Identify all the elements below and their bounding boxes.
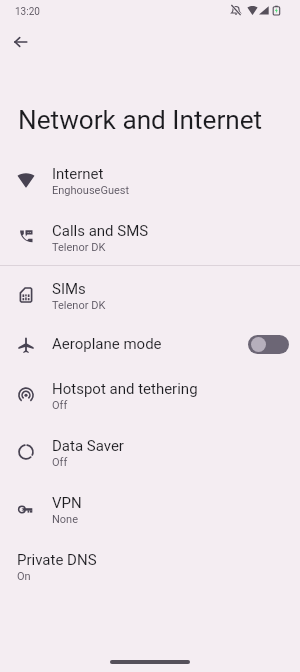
button[interactable]: VPN (0, 480, 300, 537)
button[interactable]: Aeroplane mode (0, 323, 300, 366)
button[interactable]: Internet (0, 151, 300, 208)
staticText: Telenor DK (52, 299, 106, 312)
button[interactable]: Data Saver (0, 423, 300, 480)
staticText: Aeroplane mode (52, 335, 162, 353)
button[interactable]: Back (2, 24, 38, 60)
staticText: Private DNS (17, 551, 97, 569)
staticText: Calls and SMS (52, 222, 149, 240)
staticText: EnghouseGuest (52, 184, 130, 197)
staticText: Data Saver (52, 437, 124, 455)
button[interactable]: Hotspot and tethering (0, 366, 300, 423)
button[interactable]: SIMs (0, 266, 300, 323)
staticText: SIMs (52, 280, 86, 298)
staticText: Telenor DK (52, 241, 106, 254)
staticText: Hotspot and tethering (52, 380, 198, 398)
button[interactable]: Private DNS (0, 537, 300, 594)
staticText: Off (52, 399, 68, 412)
staticText: VPN (52, 494, 82, 512)
staticText: Internet (52, 165, 104, 183)
staticText: 13:20 (15, 6, 40, 18)
staticText: On (17, 570, 31, 583)
staticText: Off (52, 456, 68, 469)
staticText: None (52, 513, 79, 526)
staticText: Network and Internet (18, 105, 263, 136)
button[interactable]: Aeroplane mode toggle (248, 335, 289, 354)
button[interactable]: Calls and SMS (0, 208, 300, 265)
